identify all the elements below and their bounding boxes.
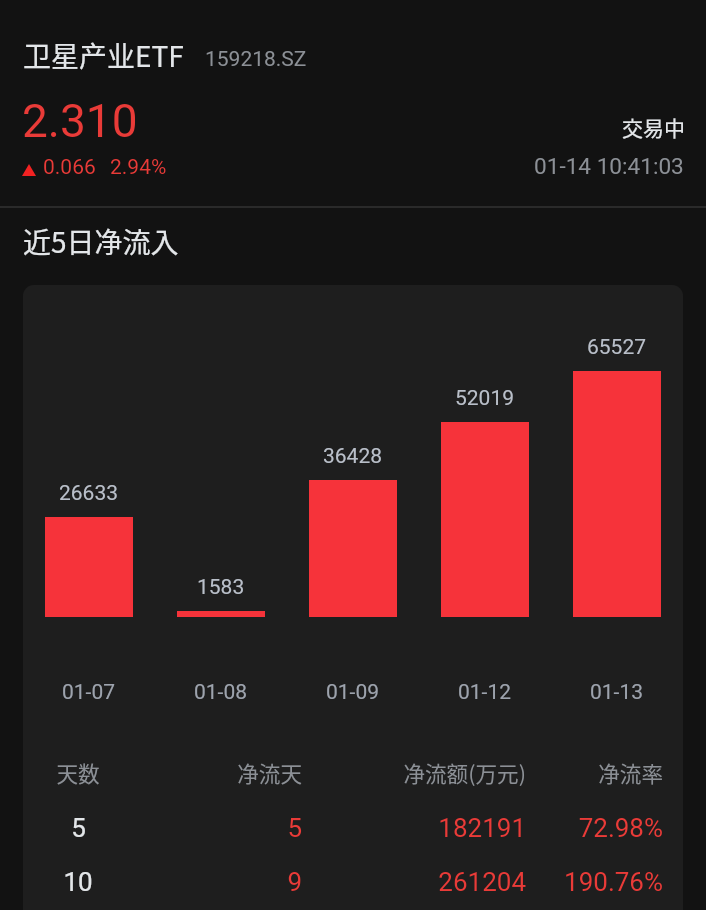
- staticText: 26633: [59, 481, 119, 506]
- button[interactable]: 26633: [23, 481, 155, 617]
- staticText: 159218.SZ: [205, 47, 307, 72]
- button[interactable]: 10: [23, 855, 683, 909]
- button[interactable]: 卫星产业ETF: [23, 35, 307, 76]
- staticText: 5: [71, 813, 86, 843]
- button[interactable]: 65527: [551, 335, 683, 617]
- staticText: 卫星产业ETF: [23, 35, 184, 76]
- staticText: 36428: [323, 444, 383, 469]
- staticText: 0.066: [43, 155, 96, 180]
- staticText: 10: [63, 867, 93, 897]
- button[interactable]: 天数: [23, 745, 683, 799]
- staticText: 261204: [438, 867, 526, 897]
- staticText: 5: [287, 813, 302, 843]
- button[interactable]: 52019: [419, 386, 551, 617]
- staticText: 净流额(万元): [403, 757, 526, 788]
- staticText: 72.98%: [578, 813, 663, 843]
- staticText: 52019: [455, 386, 515, 411]
- staticText: 2.310: [22, 94, 138, 148]
- staticText: 01-12: [458, 680, 512, 705]
- staticText: 2.94%: [110, 155, 167, 180]
- staticText: 交易中: [622, 112, 685, 142]
- staticText: 净流率: [598, 757, 663, 788]
- staticText: 65527: [587, 335, 647, 360]
- button[interactable]: 近5日净流入: [23, 221, 179, 262]
- staticText: 01-08: [194, 680, 248, 705]
- button[interactable]: 36428: [287, 444, 419, 617]
- staticText: 9: [287, 867, 302, 897]
- staticText: 190.76%: [564, 867, 663, 897]
- staticText: 天数: [56, 757, 100, 788]
- staticText: 净流天: [237, 757, 302, 788]
- staticText: 01-09: [326, 680, 380, 705]
- other: Price up: [22, 164, 36, 176]
- staticText: 1583: [197, 575, 245, 600]
- staticText: 182191: [438, 813, 526, 843]
- button[interactable]: 5: [23, 801, 683, 855]
- button[interactable]: 1583: [155, 575, 287, 617]
- staticText: 01-07: [62, 680, 116, 705]
- staticText: 01-13: [590, 680, 644, 705]
- staticText: 01-14 10:41:03: [534, 153, 684, 179]
